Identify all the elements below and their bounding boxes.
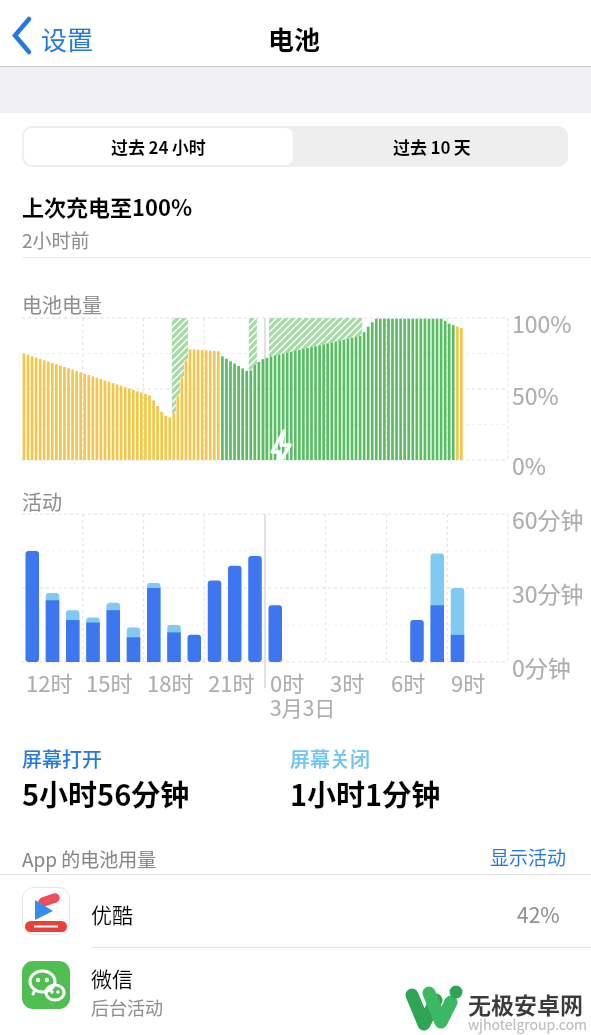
staticText: 42% (517, 899, 560, 929)
staticText: 21时 (208, 666, 255, 698)
staticText: 屏幕打开 (22, 744, 102, 773)
staticText: 30分钟 (512, 576, 584, 609)
staticText: App 的电池用量 (22, 845, 157, 873)
staticText: 显示活动 (490, 843, 567, 869)
staticText: 0时 (270, 666, 305, 698)
staticText: 9时 (451, 666, 486, 698)
staticText: 100% (512, 306, 572, 339)
staticText: 过去 24 小时 (111, 134, 206, 159)
staticText: 无极安卓网 (468, 987, 583, 1020)
button[interactable]: 显示活动 (490, 843, 570, 869)
staticText: 3月3日 (270, 692, 336, 722)
staticText: 18时 (147, 666, 194, 698)
staticText: 5小时56分钟 (22, 772, 190, 814)
staticText: 50% (512, 378, 559, 411)
staticText: 6时 (391, 666, 426, 698)
staticText: 3时 (330, 666, 365, 698)
button[interactable] (0, 948, 591, 1035)
staticText: 1小时1分钟 (290, 772, 441, 814)
button[interactable]: 过去 10 天 (295, 126, 568, 167)
staticText: 15时 (86, 666, 133, 698)
staticText: 12时 (26, 666, 73, 698)
staticText: 0% (512, 448, 546, 481)
staticText: 微信 (91, 963, 133, 993)
staticText: 上次充电至100% (22, 190, 193, 222)
staticText: 活动 (22, 487, 62, 516)
button[interactable] (0, 875, 591, 947)
staticText: 0分钟 (512, 650, 571, 683)
staticText: 2小时前 (22, 226, 90, 254)
staticText: 后台活动 (91, 994, 163, 1020)
staticText: 电池 (268, 20, 321, 58)
button[interactable]: 过去 24 小时 (24, 128, 293, 165)
staticText: 电池电量 (22, 290, 102, 319)
staticText: 60分钟 (512, 502, 584, 535)
staticText: 屏幕关闭 (290, 744, 370, 773)
staticText: 设置 (41, 20, 94, 58)
button[interactable] (12, 14, 107, 56)
staticText: 过去 10 天 (393, 134, 471, 159)
staticText: 优酷 (91, 899, 133, 929)
staticText: wjhotelgroup.com (468, 1014, 588, 1034)
